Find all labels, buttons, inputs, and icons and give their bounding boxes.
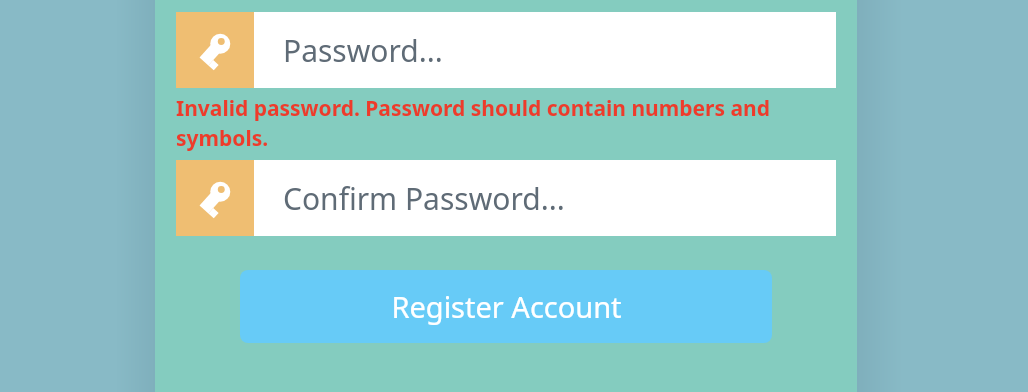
staticText: Confirm Password... — [283, 178, 565, 219]
button[interactable]: Confirm password field — [176, 160, 836, 236]
staticText: Password... — [283, 30, 443, 71]
staticText: Register Account — [391, 287, 622, 326]
button[interactable]: Password field — [176, 12, 836, 88]
staticText: Invalid password. Password should contai… — [176, 94, 836, 152]
button[interactable]: Register Account — [240, 270, 772, 343]
